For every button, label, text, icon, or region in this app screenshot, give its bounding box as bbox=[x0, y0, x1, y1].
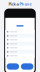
button[interactable] bbox=[5, 30, 35, 34]
button[interactable] bbox=[5, 42, 35, 46]
button[interactable] bbox=[7, 63, 19, 70]
button[interactable] bbox=[5, 34, 35, 38]
button[interactable] bbox=[5, 50, 35, 54]
button[interactable] bbox=[5, 54, 35, 58]
button[interactable] bbox=[5, 46, 35, 50]
staticText: Pick a bbox=[8, 1, 18, 7]
button[interactable] bbox=[5, 38, 35, 42]
staticText: Phone bbox=[19, 1, 31, 7]
button[interactable] bbox=[21, 63, 33, 70]
